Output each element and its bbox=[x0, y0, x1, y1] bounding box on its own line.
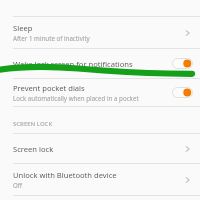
staticText: After 1 minute of inactivity bbox=[13, 34, 90, 42]
button[interactable]: Unlock with Bluetooth device bbox=[0, 164, 200, 195]
button[interactable]: Wake lock screen for notifications bbox=[0, 49, 200, 78]
button[interactable]: Prevent pocket dials bbox=[0, 79, 200, 106]
button[interactable]: Sleep bbox=[0, 17, 200, 48]
button[interactable]: Toggle bbox=[172, 58, 193, 69]
staticText: Screen lock bbox=[13, 144, 54, 154]
button[interactable]: Toggle bbox=[172, 87, 193, 98]
staticText: Prevent pocket dials bbox=[13, 83, 85, 93]
staticText: Off bbox=[13, 181, 23, 189]
staticText: Sleep bbox=[13, 23, 33, 33]
staticText: Lock automatically when placed in a pock… bbox=[13, 94, 139, 102]
staticText: SCREEN LOCK bbox=[13, 120, 53, 128]
staticText: Wake lock screen for notifications bbox=[13, 59, 133, 69]
button[interactable]: Screen lock bbox=[0, 134, 200, 163]
staticText: Unlock with Bluetooth device bbox=[13, 170, 117, 180]
